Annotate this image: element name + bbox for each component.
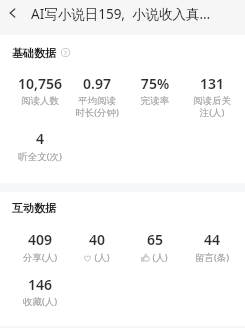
staticText: 收藏(人) (14, 295, 66, 308)
staticText: ? (64, 49, 67, 57)
staticText: 131 (186, 74, 238, 93)
staticText: 146 (14, 275, 66, 294)
button[interactable] (14, 275, 66, 321)
button[interactable] (186, 230, 238, 277)
button[interactable] (186, 74, 238, 121)
staticText: 基础数据 (12, 46, 56, 60)
staticText: 听全文(次) (14, 150, 66, 163)
staticText: 留言(条) (186, 251, 238, 264)
button[interactable] (129, 74, 181, 121)
staticText: 10,756 (14, 74, 66, 93)
staticText: 阅读人数 (14, 95, 66, 107)
button[interactable] (14, 230, 66, 277)
staticText: (人) (152, 251, 168, 264)
button[interactable]: Back (0, 0, 24, 25)
staticText: 阅读后关 注(人) (186, 95, 238, 119)
button[interactable] (14, 74, 66, 121)
staticText: 完读率 (129, 95, 181, 107)
button[interactable]: 基础数据 (12, 46, 70, 60)
button[interactable] (71, 74, 123, 121)
staticText: 4 (14, 129, 66, 148)
staticText: 互动数据 (12, 201, 56, 215)
staticText: 65 (129, 230, 181, 249)
staticText: AI写小说日159, 小说收入真… (31, 5, 211, 23)
staticText: 75% (129, 74, 181, 93)
staticText: 409 (14, 230, 66, 249)
staticText: 分享(人) (14, 251, 66, 264)
button[interactable] (129, 230, 181, 277)
button[interactable] (71, 230, 123, 277)
staticText: 44 (186, 230, 238, 249)
button[interactable] (14, 129, 66, 176)
staticText: 40 (71, 230, 123, 249)
staticText: 平均阅读 时长(分钟) (71, 95, 123, 119)
staticText: (人) (94, 251, 110, 264)
staticText: 0.97 (71, 74, 123, 93)
